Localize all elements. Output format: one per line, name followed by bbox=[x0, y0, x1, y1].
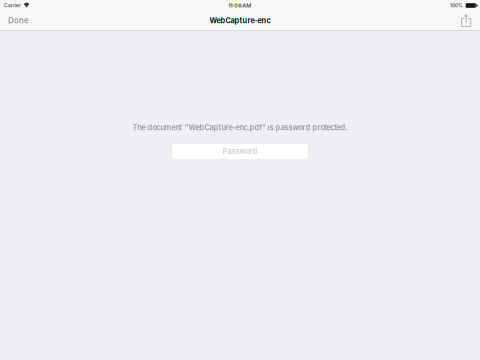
button[interactable]: Password bbox=[172, 144, 308, 159]
staticText: 11:06 AM bbox=[228, 2, 251, 9]
staticText: The document “WebCapture-enc.pdf” is pas… bbox=[132, 123, 347, 132]
staticText: 100% bbox=[450, 2, 463, 8]
staticText: Password bbox=[222, 147, 257, 156]
button[interactable]: Share bbox=[456, 11, 480, 30]
staticText: WebCapture-enc bbox=[209, 16, 270, 25]
staticText: Done bbox=[8, 16, 29, 25]
staticText: Carrier bbox=[4, 2, 21, 8]
button[interactable]: Done bbox=[0, 11, 37, 30]
